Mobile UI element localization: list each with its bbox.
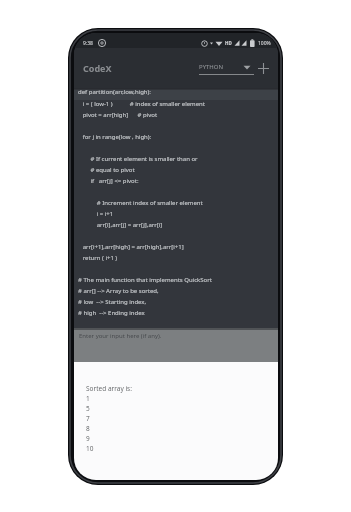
staticText: PYTHON [199, 63, 224, 71]
staticText: def partition(arr,low,high): i = ( low-1… [78, 88, 212, 316]
staticText: HD [225, 40, 232, 46]
button[interactable]: Enter your input here (if any). [74, 328, 278, 362]
staticText: Sorted array is: 1 5 7 8 9 10 [86, 384, 132, 453]
staticText: 100% [258, 40, 271, 47]
staticText: 9:38 [83, 40, 93, 47]
button[interactable]: PYTHON [199, 63, 254, 75]
staticText: CodeX [83, 62, 112, 74]
staticText: Enter your input here (if any). [79, 332, 162, 340]
button[interactable] [256, 61, 271, 76]
